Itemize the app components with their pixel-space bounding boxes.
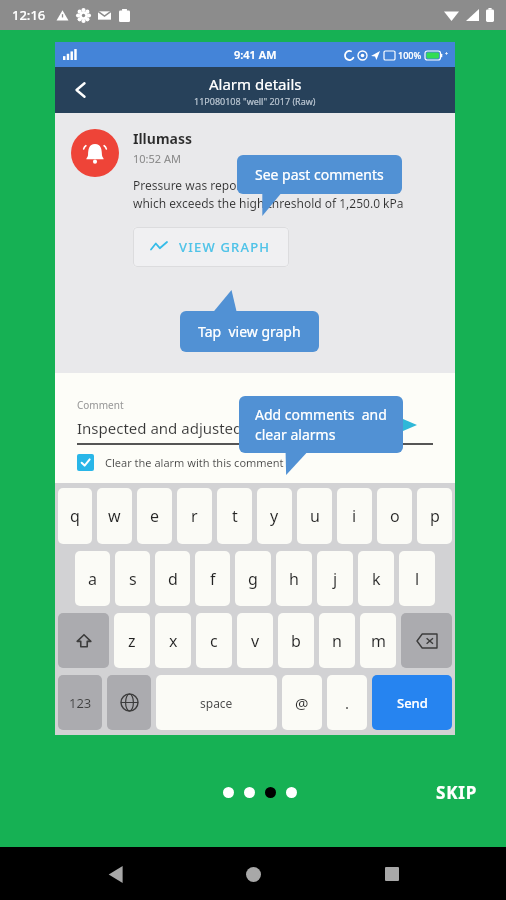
staticText: Tap view graph bbox=[198, 322, 301, 341]
button[interactable]: m bbox=[360, 613, 396, 668]
button[interactable]: i bbox=[337, 488, 372, 544]
button[interactable]: j bbox=[317, 551, 353, 606]
staticText: i bbox=[352, 505, 357, 527]
button[interactable]: SKIP bbox=[430, 775, 484, 810]
staticText: Alarm details bbox=[209, 74, 302, 94]
button[interactable] bbox=[286, 787, 297, 798]
button[interactable] bbox=[244, 787, 255, 798]
button[interactable]: n bbox=[319, 613, 355, 668]
staticText: r bbox=[191, 505, 198, 527]
button[interactable]: d bbox=[155, 551, 190, 606]
staticText: which exceeds the high threshold of 1,25… bbox=[133, 195, 404, 211]
button[interactable]: f bbox=[195, 551, 230, 606]
staticText: ⁺ bbox=[445, 49, 449, 61]
button[interactable]: b bbox=[278, 613, 314, 668]
button[interactable]: Back bbox=[63, 72, 99, 108]
button[interactable]: Shift bbox=[58, 613, 109, 668]
staticText: VIEW GRAPH bbox=[179, 238, 271, 256]
button[interactable]: Tap view graph bbox=[180, 311, 319, 352]
staticText: space bbox=[200, 695, 233, 711]
staticText: @ bbox=[295, 693, 309, 713]
staticText: 9:41 AM bbox=[234, 47, 277, 62]
staticText: See past comments bbox=[255, 165, 384, 184]
staticText: v bbox=[251, 630, 260, 652]
button[interactable] bbox=[223, 787, 234, 798]
button[interactable]: h bbox=[276, 551, 312, 606]
staticText: f bbox=[210, 568, 216, 590]
staticText: w bbox=[108, 505, 121, 527]
button[interactable]: r bbox=[177, 488, 212, 544]
staticText: t bbox=[232, 505, 238, 527]
button[interactable]: @ bbox=[282, 675, 322, 730]
staticText: 123 bbox=[69, 694, 92, 712]
staticText: k bbox=[372, 568, 381, 590]
button[interactable] bbox=[265, 787, 276, 798]
button[interactable]: VIEW GRAPH bbox=[133, 227, 289, 267]
staticText: e bbox=[150, 505, 160, 527]
button[interactable]: w bbox=[97, 488, 132, 544]
staticText: x bbox=[169, 630, 178, 652]
button[interactable]: q bbox=[58, 488, 92, 544]
staticText: h bbox=[289, 568, 299, 590]
staticText: c bbox=[210, 630, 218, 652]
staticText: Clear the alarm with this comment bbox=[105, 455, 284, 470]
button[interactable]: Backspace bbox=[401, 613, 452, 668]
button[interactable]: s bbox=[115, 551, 150, 606]
staticText: d bbox=[168, 568, 178, 590]
button[interactable]: k bbox=[358, 551, 394, 606]
staticText: Inspected and adjusted bbox=[77, 418, 243, 438]
button[interactable]: . bbox=[327, 675, 367, 730]
staticText: n bbox=[332, 630, 342, 652]
button[interactable]: l bbox=[399, 551, 435, 606]
staticText: Comment bbox=[77, 398, 124, 412]
staticText: . bbox=[345, 693, 350, 713]
staticText: q bbox=[70, 505, 80, 527]
staticText: j bbox=[333, 568, 338, 590]
button[interactable]: Send bbox=[372, 675, 452, 730]
staticText: p bbox=[430, 505, 440, 527]
button[interactable]: See past comments bbox=[237, 155, 402, 194]
staticText: Pressure was reported at 1,310.0 kPa bbox=[133, 177, 342, 193]
staticText: Send bbox=[397, 694, 428, 712]
staticText: y bbox=[270, 505, 279, 527]
button[interactable]: p bbox=[417, 488, 452, 544]
staticText: o bbox=[390, 505, 400, 527]
staticText: 12:16 bbox=[12, 6, 46, 24]
button[interactable]: y bbox=[257, 488, 292, 544]
staticText: SKIP bbox=[436, 781, 478, 804]
button[interactable]: Change keyboard bbox=[107, 675, 151, 730]
staticText: l bbox=[415, 568, 420, 590]
button[interactable]: g bbox=[235, 551, 271, 606]
button[interactable]: v bbox=[237, 613, 273, 668]
button[interactable]: z bbox=[114, 613, 150, 668]
staticText: 100% bbox=[398, 49, 422, 61]
staticText: 11P080108 "well" 2017 (Raw) bbox=[194, 95, 316, 107]
button[interactable]: Clear the alarm with this comment bbox=[77, 454, 284, 471]
staticText: Add comments and clear alarms bbox=[255, 405, 387, 444]
staticText: m bbox=[371, 630, 386, 652]
staticText: a bbox=[88, 568, 97, 590]
staticText: s bbox=[129, 568, 137, 590]
button[interactable]: o bbox=[377, 488, 412, 544]
button[interactable]: t bbox=[217, 488, 252, 544]
staticText: Illumass bbox=[133, 129, 192, 148]
staticText: g bbox=[248, 568, 258, 590]
button[interactable]: Home bbox=[229, 850, 277, 898]
button[interactable]: Add comments and clear alarms bbox=[239, 396, 403, 453]
button[interactable]: u bbox=[297, 488, 332, 544]
staticText: 10:52 AM bbox=[133, 151, 181, 166]
button[interactable]: space bbox=[156, 675, 277, 730]
button[interactable]: x bbox=[155, 613, 191, 668]
staticText: z bbox=[128, 630, 136, 652]
button[interactable]: a bbox=[75, 551, 110, 606]
button[interactable]: Numbers bbox=[58, 675, 102, 730]
staticText: u bbox=[310, 505, 320, 527]
staticText: b bbox=[291, 630, 301, 652]
button[interactable]: Back bbox=[91, 850, 139, 898]
button[interactable]: Recent apps bbox=[368, 850, 416, 898]
button[interactable]: c bbox=[196, 613, 232, 668]
button[interactable]: e bbox=[137, 488, 172, 544]
